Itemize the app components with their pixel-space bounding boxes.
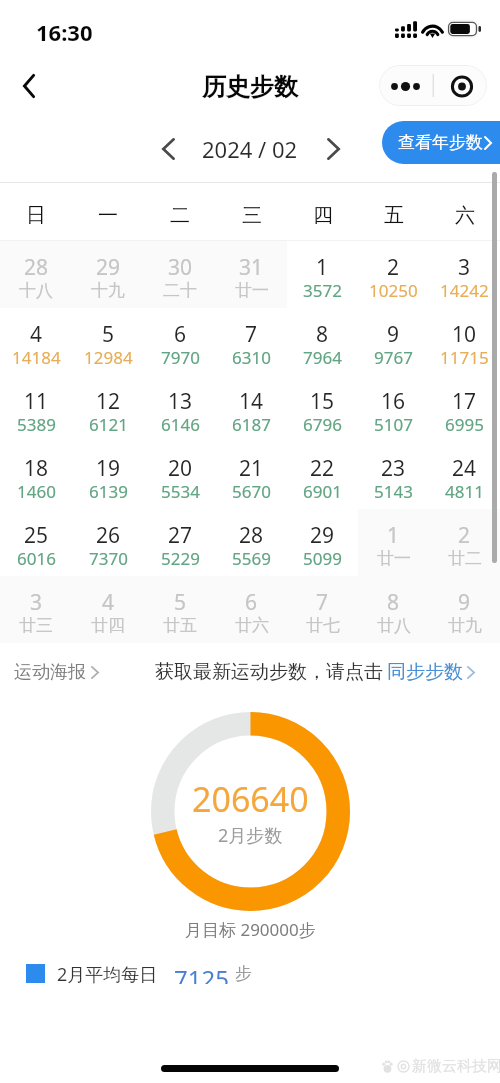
staticText: 二 — [170, 203, 190, 228]
button[interactable]: 31 — [216, 241, 287, 308]
staticText: 6796 — [303, 413, 342, 436]
button[interactable]: 7 — [287, 576, 358, 643]
button[interactable]: 29 — [72, 241, 144, 308]
button[interactable]: 3 — [429, 241, 500, 308]
button[interactable]: 4 — [0, 308, 72, 375]
staticText: 14 — [239, 387, 264, 416]
button[interactable]: 4 — [72, 576, 144, 643]
staticText: 廿一 — [377, 548, 411, 569]
staticText: 19 — [96, 454, 121, 483]
staticText: 18 — [24, 454, 49, 483]
button[interactable]: 26 — [72, 509, 144, 576]
staticText: 日 — [26, 203, 46, 228]
button[interactable]: 20 — [144, 442, 216, 509]
button[interactable]: 17 — [429, 375, 500, 442]
staticText: 5229 — [161, 547, 200, 570]
staticText: 六 — [455, 203, 475, 228]
staticText: 5 — [174, 588, 187, 617]
staticText: 6121 — [89, 413, 128, 436]
staticText: 十八 — [19, 280, 53, 301]
staticText: 6 — [174, 320, 187, 349]
button[interactable]: 14 — [216, 375, 287, 442]
staticText: 31 — [239, 253, 264, 282]
button[interactable]: 18 — [0, 442, 72, 509]
button[interactable]: 5 — [144, 576, 216, 643]
button[interactable]: 29 — [287, 509, 358, 576]
button[interactable]: More options and close — [379, 65, 487, 106]
staticText: 月目标 290000步 — [185, 918, 316, 941]
button[interactable]: 1 — [358, 509, 429, 576]
button[interactable]: 22 — [287, 442, 358, 509]
button[interactable]: 11 — [0, 375, 72, 442]
staticText: 5107 — [374, 413, 413, 436]
button[interactable]: 24 — [429, 442, 500, 509]
staticText: 15 — [310, 387, 335, 416]
staticText: 五 — [384, 203, 404, 228]
staticText: 10 — [452, 320, 477, 349]
button[interactable]: 7 — [216, 308, 287, 375]
staticText: 7 — [316, 588, 329, 617]
staticText: 26 — [96, 521, 121, 550]
staticText: 2 — [387, 253, 400, 282]
staticText: 廿五 — [163, 615, 197, 636]
button[interactable]: 30 — [144, 241, 216, 308]
staticText: 廿一 — [235, 280, 269, 301]
button[interactable]: 19 — [72, 442, 144, 509]
button[interactable]: 查看年步数 — [382, 121, 500, 164]
button[interactable]: 运动海报 — [10, 655, 103, 689]
staticText: 廿九 — [448, 615, 482, 636]
button[interactable]: 10 — [429, 308, 500, 375]
staticText: 4811 — [445, 480, 484, 503]
button[interactable]: 6 — [216, 576, 287, 643]
button[interactable]: 3 — [0, 576, 72, 643]
button[interactable]: 9 — [358, 308, 429, 375]
staticText: 1460 — [17, 480, 56, 503]
button[interactable]: 6 — [144, 308, 216, 375]
staticText: 2 — [458, 521, 471, 550]
button[interactable]: 23 — [358, 442, 429, 509]
staticText: 获取最新运动步数，请点击 — [155, 660, 383, 684]
button[interactable]: 27 — [144, 509, 216, 576]
staticText: 5099 — [303, 547, 342, 570]
staticText: 步 — [235, 963, 252, 984]
staticText: 2月平均每日 — [57, 962, 158, 984]
staticText: 22 — [310, 454, 335, 483]
staticText: 206640 — [192, 776, 309, 822]
staticText: 同步步数 — [387, 660, 463, 684]
button[interactable]: 25 — [0, 509, 72, 576]
staticText: 4 — [102, 588, 115, 617]
button[interactable]: 同步步数 — [383, 660, 475, 684]
button[interactable]: Next month — [318, 134, 348, 164]
button[interactable]: 2 — [358, 241, 429, 308]
button[interactable]: 21 — [216, 442, 287, 509]
button[interactable]: 15 — [287, 375, 358, 442]
staticText: 11 — [24, 387, 49, 416]
button[interactable]: 1 — [287, 241, 358, 308]
staticText: 7970 — [161, 346, 200, 369]
button[interactable]: Back — [7, 64, 51, 108]
staticText: 四 — [313, 203, 333, 228]
button[interactable]: 28 — [216, 509, 287, 576]
button[interactable]: 16 — [358, 375, 429, 442]
staticText: 运动海报 — [14, 661, 86, 684]
staticText: 一 — [98, 203, 118, 228]
staticText: 24 — [452, 454, 477, 483]
button[interactable]: 28 — [0, 241, 72, 308]
staticText: 6146 — [161, 413, 200, 436]
staticText: 6901 — [303, 480, 342, 503]
staticText: 1 — [387, 521, 400, 550]
button[interactable]: 2 — [429, 509, 500, 576]
button[interactable]: Previous month — [153, 134, 183, 164]
staticText: 6139 — [89, 480, 128, 503]
button[interactable]: 8 — [287, 308, 358, 375]
button[interactable]: 12 — [72, 375, 144, 442]
staticText: 6016 — [17, 547, 56, 570]
staticText: 25 — [24, 521, 49, 550]
button[interactable]: 13 — [144, 375, 216, 442]
button[interactable]: 8 — [358, 576, 429, 643]
staticText: 三 — [242, 203, 262, 228]
staticText: 3 — [458, 253, 471, 282]
button[interactable]: 9 — [429, 576, 500, 643]
button[interactable]: 5 — [72, 308, 144, 375]
staticText: 7 — [245, 320, 258, 349]
